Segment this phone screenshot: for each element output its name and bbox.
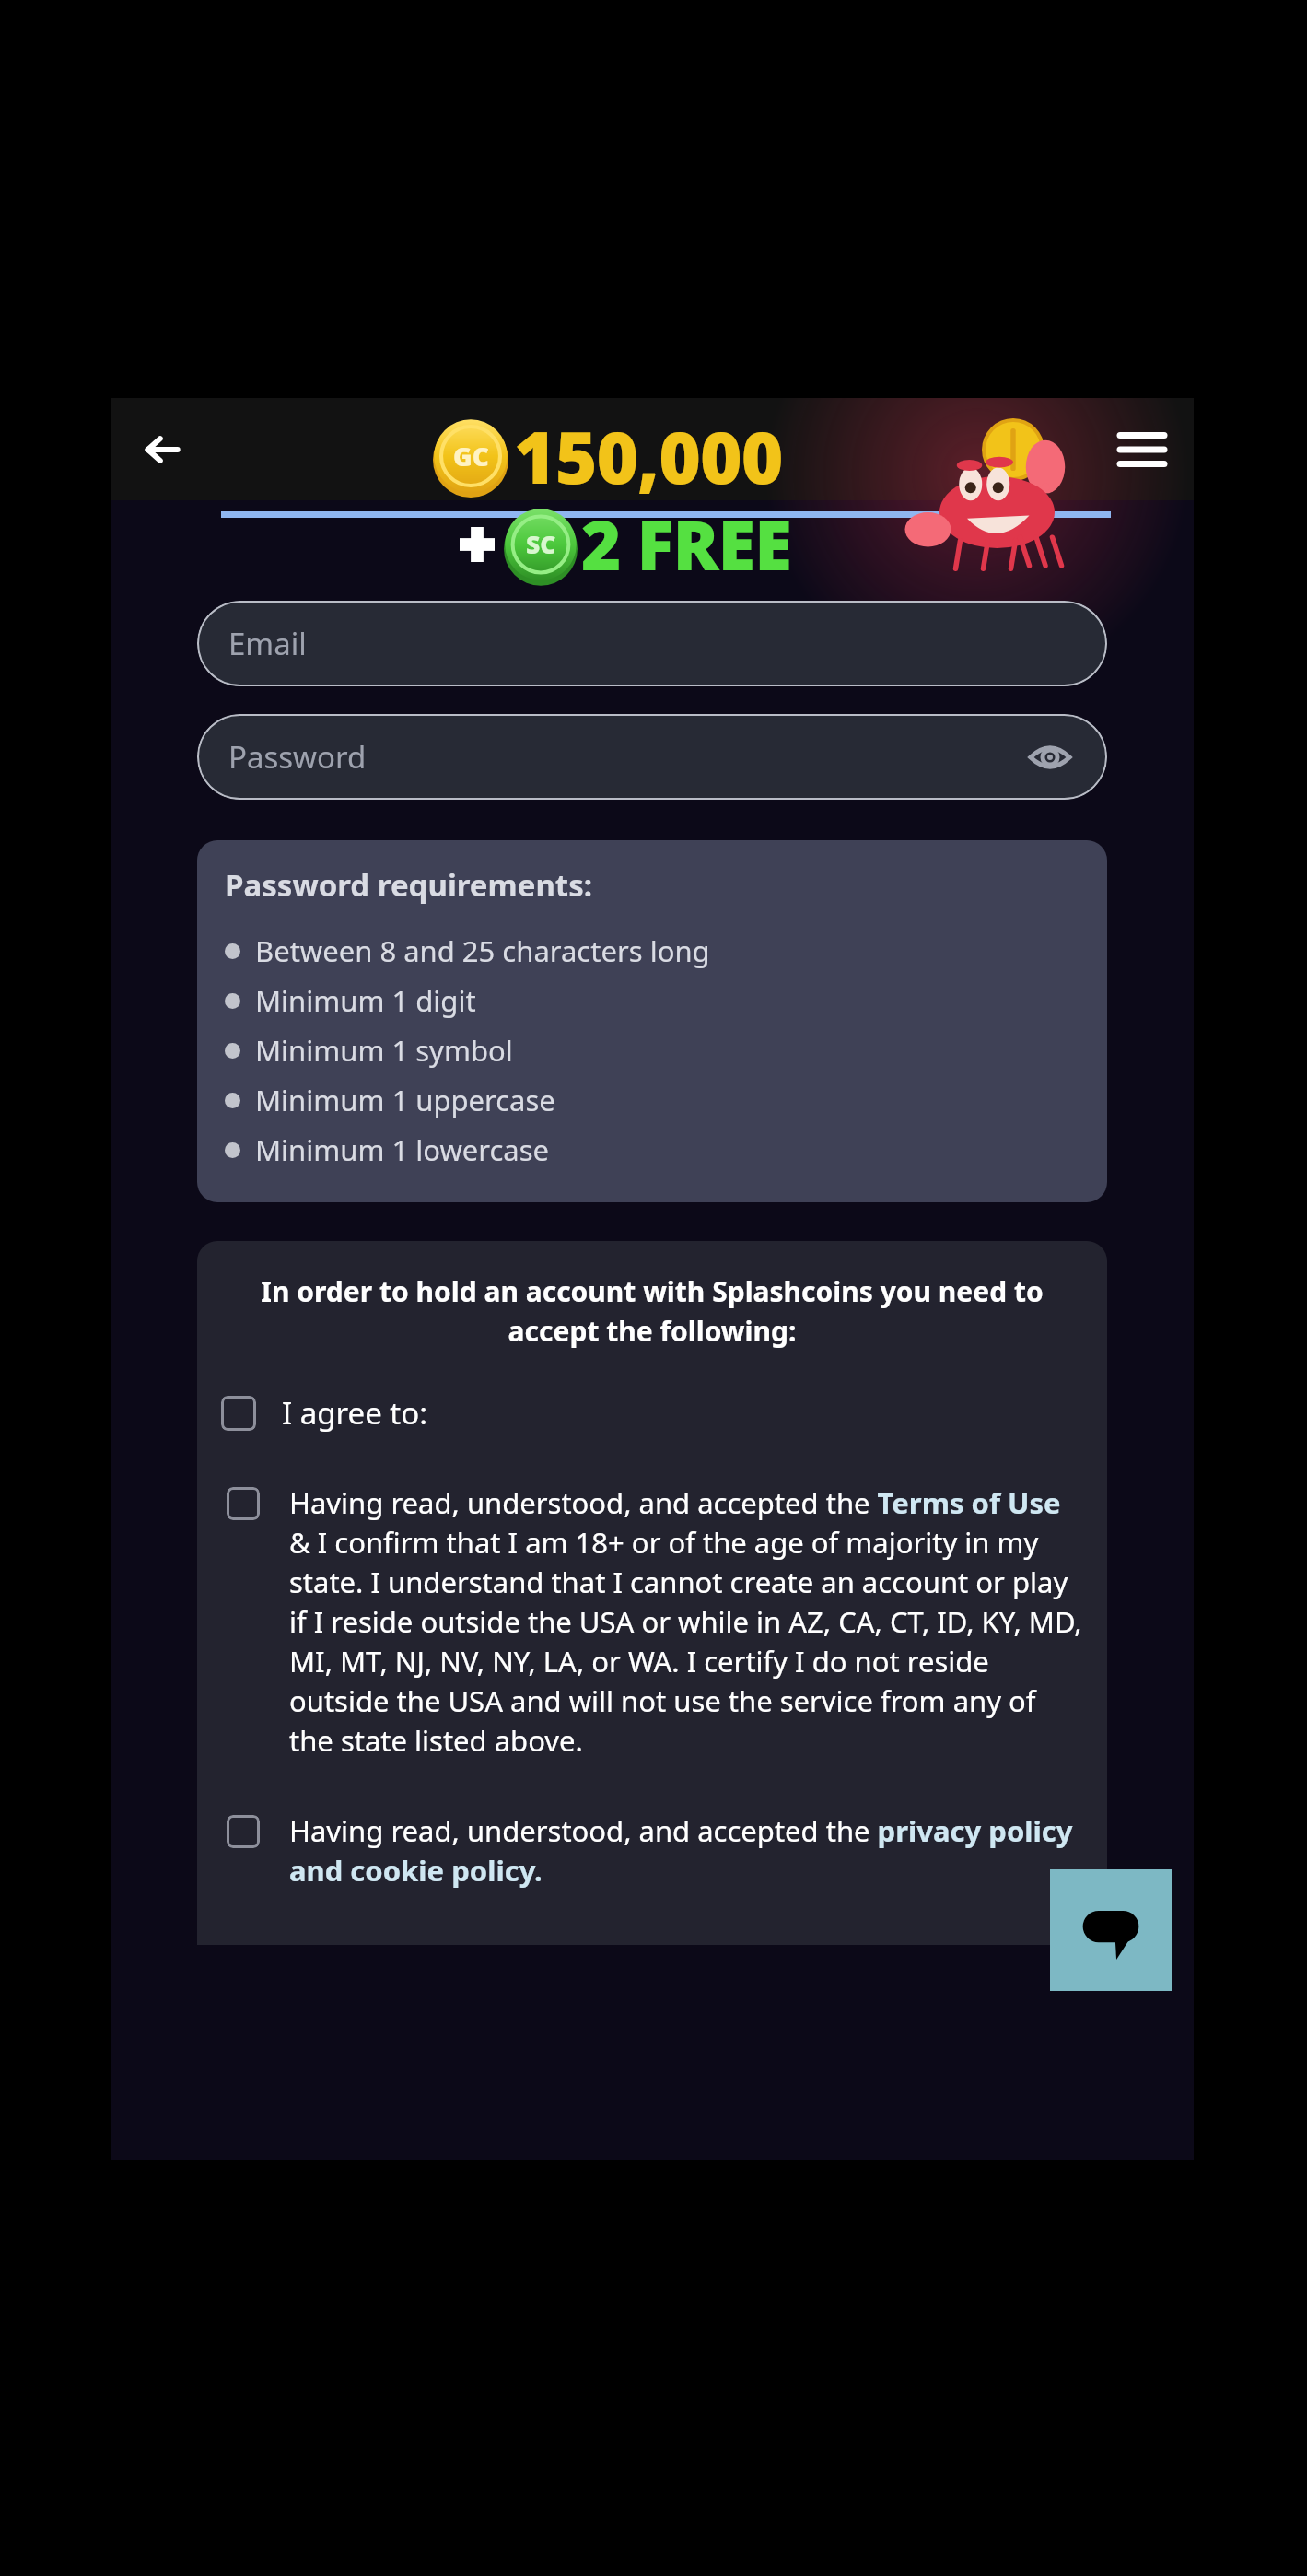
button[interactable]: Open chat (1050, 1869, 1172, 1991)
staticText: Password requirements: (225, 864, 593, 906)
staticText: Email (228, 623, 307, 664)
staticText: Between 8 and 25 characters long (255, 931, 710, 970)
staticText: Password (228, 736, 367, 778)
button[interactable]: Menu (1107, 415, 1177, 485)
staticText: GC (453, 439, 489, 474)
staticText: Minimum 1 symbol (255, 1031, 513, 1070)
button[interactable]: Checkbox (221, 1387, 1083, 1439)
staticText: Having read, understood, and accepted th… (289, 1811, 1083, 1890)
button[interactable]: Checkbox (221, 1396, 256, 1431)
button[interactable]: Checkbox (227, 1815, 260, 1848)
staticText: Minimum 1 digit (255, 981, 476, 1020)
button[interactable]: Email (197, 601, 1107, 686)
staticText: Minimum 1 uppercase (255, 1081, 555, 1119)
staticText: Having read, understood, and accepted th… (289, 1483, 1083, 1760)
staticText: I agree to: (282, 1392, 428, 1434)
staticText: 150,000 (514, 407, 783, 505)
staticText: 2 FREE (581, 498, 791, 591)
staticText: Minimum 1 lowercase (255, 1130, 550, 1169)
button[interactable]: Show password (1024, 732, 1076, 783)
button[interactable]: Checkbox (227, 1487, 260, 1520)
button[interactable]: Checkbox (221, 1483, 1083, 1760)
button[interactable]: Password (197, 714, 1107, 800)
button[interactable]: Checkbox (221, 1811, 1083, 1890)
button[interactable]: Back (127, 415, 197, 485)
staticText: In order to hold an account with Splashc… (221, 1272, 1083, 1350)
staticText: SC (526, 528, 556, 561)
